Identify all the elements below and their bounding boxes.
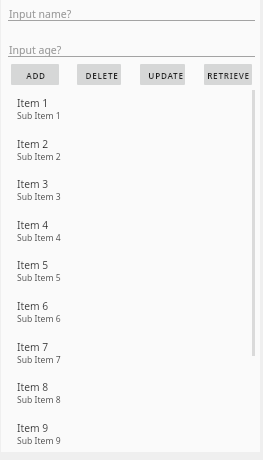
button[interactable]: Item 5	[0, 252, 263, 293]
staticText: Sub Item 2	[17, 151, 61, 163]
staticText: Item 1	[17, 96, 49, 110]
staticText: Item 3	[17, 177, 49, 191]
staticText: UPDATE	[148, 70, 184, 81]
staticText: Item 5	[17, 258, 49, 272]
staticText: DELETE	[85, 70, 119, 81]
button[interactable]: Item 4	[0, 212, 263, 253]
staticText: Sub Item 5	[17, 272, 61, 284]
button[interactable]: UPDATE	[140, 64, 185, 85]
button[interactable]: ADD	[11, 64, 59, 85]
staticText: Item 7	[17, 340, 49, 354]
button[interactable]: Item 6	[0, 293, 263, 334]
staticText: Item 4	[17, 218, 49, 232]
button[interactable]: Item 3	[0, 171, 263, 212]
staticText: Sub Item 1	[17, 110, 61, 122]
staticText: Item 9	[17, 421, 49, 435]
button[interactable]: Item 1	[0, 90, 263, 131]
staticText: Item 6	[17, 299, 49, 313]
staticText: RETRIEVE	[207, 70, 250, 81]
staticText: ADD	[26, 70, 46, 81]
staticText: Item 8	[17, 380, 49, 394]
staticText: Sub Item 4	[17, 232, 61, 244]
staticText: Input name?	[9, 7, 72, 21]
button[interactable]: RETRIEVE	[204, 64, 252, 85]
staticText: Sub Item 6	[17, 313, 61, 325]
button[interactable]: Item 9	[0, 415, 263, 456]
button[interactable]: Item 8	[0, 374, 263, 415]
staticText: Sub Item 3	[17, 191, 61, 203]
staticText: Sub Item 9	[17, 435, 61, 447]
button[interactable]: Item 7	[0, 334, 263, 375]
button[interactable]: Item 2	[0, 131, 263, 172]
button[interactable]: DELETE	[77, 64, 121, 85]
staticText: Item 2	[17, 137, 49, 151]
staticText: Input age?	[9, 43, 62, 57]
staticText: Sub Item 8	[17, 394, 61, 406]
staticText: Sub Item 7	[17, 354, 61, 366]
